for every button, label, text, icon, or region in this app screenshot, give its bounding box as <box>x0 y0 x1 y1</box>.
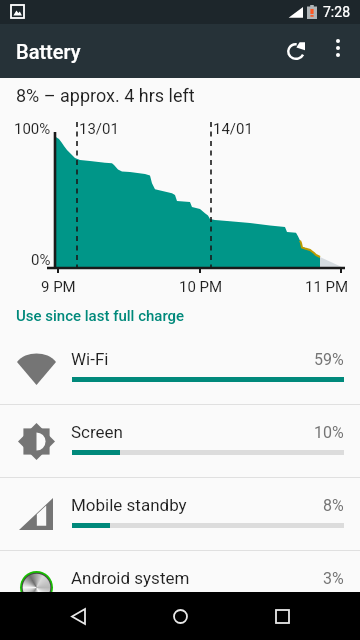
staticText: Battery <box>16 40 81 63</box>
button[interactable]: Refresh <box>272 27 320 75</box>
button[interactable]: Home <box>156 592 204 640</box>
button[interactable]: Android system <box>0 551 360 623</box>
staticText: 8% – approx. 4 hrs left <box>16 85 195 106</box>
staticText: Use since last full charge <box>16 307 185 325</box>
staticText: Mobile standby <box>71 495 187 515</box>
staticText: 0% <box>31 251 51 269</box>
button[interactable]: More options <box>314 24 360 72</box>
button[interactable]: Mobile standby <box>0 478 360 550</box>
button[interactable]: Back <box>54 592 102 640</box>
button[interactable]: Screen <box>0 405 360 477</box>
staticText: 14/01 <box>213 120 253 138</box>
staticText: Android system <box>71 568 190 588</box>
staticText: 10% <box>314 423 344 442</box>
button[interactable]: Wi-Fi <box>0 332 360 404</box>
staticText: 8% <box>323 496 344 515</box>
staticText: Screen <box>71 422 124 442</box>
staticText: Wi-Fi <box>71 349 109 369</box>
button[interactable]: Recent apps <box>258 592 306 640</box>
staticText: 100% <box>14 120 51 138</box>
staticText: 13/01 <box>79 120 119 138</box>
staticText: 10 PM <box>179 278 223 296</box>
staticText: 9 PM <box>41 278 76 296</box>
staticText: 7:28 <box>323 4 350 20</box>
staticText: 11 PM <box>305 278 349 296</box>
staticText: 3% <box>323 569 344 588</box>
staticText: 59% <box>314 350 344 369</box>
